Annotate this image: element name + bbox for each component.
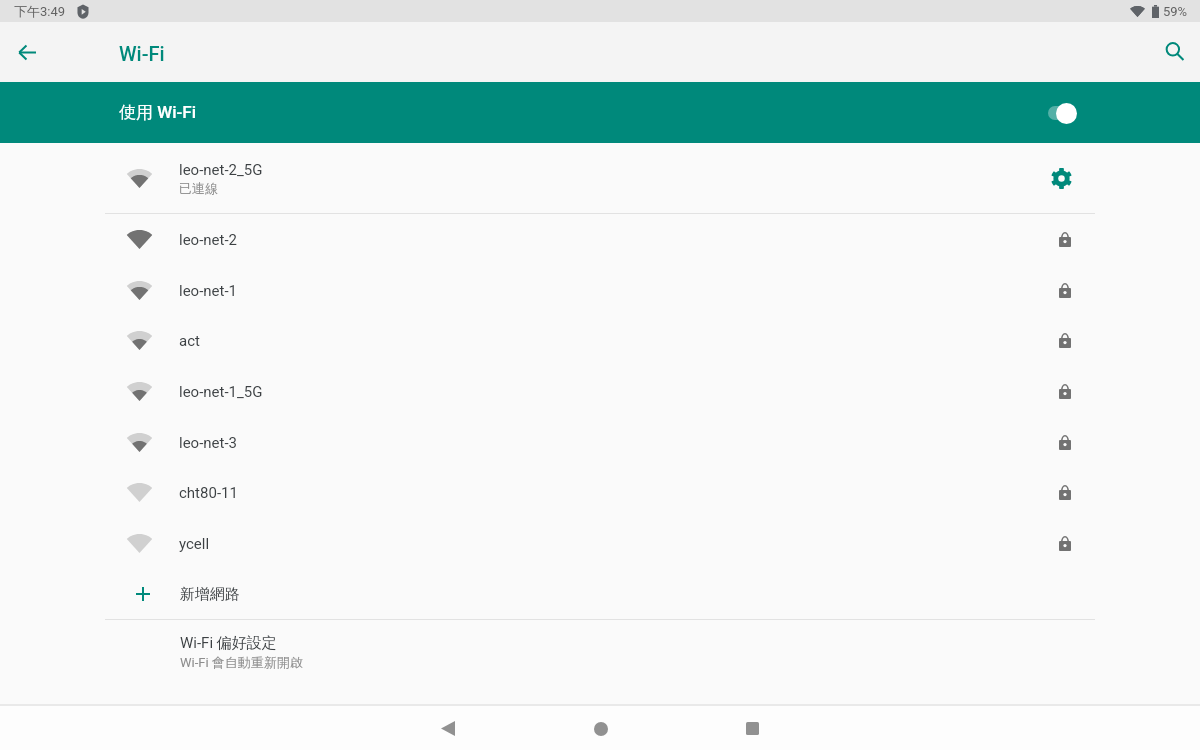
- staticText: leo-net-1_5G: [179, 383, 263, 401]
- button[interactable]: leo-net-3: [0, 417, 1200, 468]
- staticText: 新增網路: [180, 585, 240, 604]
- staticText: leo-net-3: [179, 434, 238, 452]
- staticText: ycell: [179, 535, 210, 553]
- button[interactable]: act: [0, 315, 1200, 366]
- button[interactable]: Recents: [729, 706, 775, 750]
- button[interactable]: Network settings: [1044, 161, 1078, 195]
- other: Secured network: [1055, 281, 1075, 301]
- button[interactable]: Back: [4, 29, 49, 75]
- other: Secured network: [1055, 382, 1075, 402]
- staticText: Wi-Fi 會自動重新開啟: [180, 654, 303, 670]
- staticText: 已連線: [179, 180, 218, 196]
- button[interactable]: leo-net-2_5G: [0, 143, 1200, 213]
- other: Secured network: [1055, 483, 1075, 503]
- staticText: leo-net-2_5G: [179, 161, 263, 179]
- button[interactable]: Wi-Fi 偏好設定: [0, 620, 1200, 702]
- button[interactable]: Search: [1152, 29, 1198, 75]
- button[interactable]: Back: [425, 706, 471, 750]
- button[interactable]: leo-net-2: [0, 214, 1200, 265]
- staticText: Wi-Fi 偏好設定: [180, 634, 277, 653]
- staticText: leo-net-2: [179, 231, 238, 249]
- button[interactable]: leo-net-1: [0, 265, 1200, 316]
- staticText: 下午3:49: [14, 3, 66, 19]
- staticText: Wi-Fi: [119, 42, 165, 65]
- button[interactable]: 新增網路: [0, 569, 1200, 619]
- button[interactable]: 使用 Wi-Fi: [0, 82, 1200, 143]
- button[interactable]: Home: [578, 706, 624, 750]
- other: Secured network: [1055, 230, 1075, 250]
- button[interactable]: cht80-11: [0, 467, 1200, 518]
- staticText: 59%: [1163, 4, 1188, 19]
- other: Secured network: [1055, 331, 1075, 351]
- other: Secured network: [1055, 433, 1075, 453]
- staticText: cht80-11: [179, 484, 238, 502]
- staticText: 使用 Wi-Fi: [119, 102, 196, 123]
- button[interactable]: leo-net-1_5G: [0, 366, 1200, 417]
- other: Secured network: [1055, 534, 1075, 554]
- button[interactable]: ycell: [0, 518, 1200, 569]
- staticText: leo-net-1: [179, 282, 238, 300]
- staticText: act: [179, 332, 200, 350]
